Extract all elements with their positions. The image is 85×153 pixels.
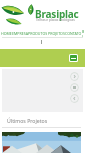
staticText: HOME (1, 31, 12, 36)
button[interactable]: CONTATO (65, 31, 82, 36)
staticText: Telhas e placas ecológicas (36, 18, 75, 22)
button[interactable]: Produto (69, 54, 78, 62)
button[interactable]: Próximo (70, 72, 79, 81)
staticText: PROJETOS (48, 31, 65, 36)
button[interactable]: BLOG (82, 29, 84, 37)
staticText: PRODUTOS (28, 31, 48, 36)
staticText: BLOG (82, 29, 84, 37)
button[interactable]: PRODUTOS (28, 31, 48, 36)
staticText: EMPRESA (12, 31, 28, 36)
button[interactable]: Parar (70, 83, 79, 92)
staticText: CONTATO (65, 31, 82, 36)
button[interactable]: PROJETOS (48, 31, 65, 36)
staticText: Brasiplac (35, 7, 79, 21)
button[interactable]: HOME (1, 31, 12, 36)
button[interactable]: Últimos Projetos (7, 117, 48, 124)
button[interactable] (2, 132, 81, 153)
button[interactable]: Anterior (70, 94, 79, 103)
button[interactable]: EMPRESA (12, 31, 28, 36)
